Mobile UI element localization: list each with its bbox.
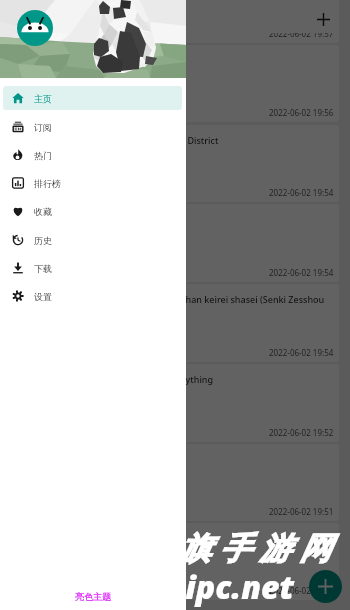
staticText: qipc.net [166, 565, 295, 609]
button[interactable]: 订阅 [3, 115, 182, 139]
staticText: 亮色主题 [75, 591, 111, 602]
staticText: 2022-06-02 19:50 [269, 585, 334, 596]
button[interactable]: 主页 [3, 86, 182, 110]
button[interactable]: Profile [17, 10, 53, 46]
staticText: Anything [174, 373, 214, 385]
button[interactable]: Gochuumon [11, 45, 339, 122]
button[interactable]: 收藏 [3, 199, 182, 223]
button[interactable]: Senki-chan keirei shasei (Senki Zesshou [11, 284, 339, 362]
staticText: 旗手游网 [175, 529, 335, 568]
staticText: Gochuumon [110, 54, 164, 66]
button[interactable]: 亮色主题 [71, 587, 115, 606]
staticText: 主页 [34, 93, 52, 104]
staticText: 热门 [34, 150, 52, 161]
staticText: 2022-06-02 19:54 [269, 267, 334, 278]
staticText: 2022-06-02 19:57 [269, 28, 334, 39]
button[interactable]: 历史 [3, 228, 182, 252]
button[interactable]: Add new [309, 570, 342, 603]
staticText: 收藏 [34, 206, 52, 217]
button[interactable]: 下载 [3, 256, 182, 280]
staticText: 2022-06-02 19:54 [269, 187, 334, 198]
button[interactable]: 热门 [3, 143, 182, 167]
staticText: 排行榜 [34, 178, 61, 189]
staticText: 2022-06-02 19:56 [269, 107, 334, 118]
button[interactable]: 设置 [3, 284, 182, 308]
button[interactable]: Kono Sekai [11, 204, 339, 282]
staticText: Shibuya District [151, 134, 219, 146]
button[interactable]: 2022-06-02 19:57 [11, 0, 339, 43]
staticText: 2022-06-02 19:52 [269, 427, 334, 438]
staticText: 下载 [34, 263, 52, 274]
button[interactable]: Add [312, 8, 334, 30]
staticText: 历史 [34, 235, 52, 246]
button[interactable]: Sword Art [11, 523, 339, 600]
button[interactable]: Yahari Ore [11, 444, 339, 521]
staticText: Senki-chan keirei shasei (Senki Zesshou [155, 293, 325, 305]
staticText: 设置 [34, 291, 52, 302]
button[interactable]: 排行榜 [3, 171, 182, 195]
staticText: 2022-06-02 19:54 [269, 347, 334, 358]
button[interactable]: Shibuya District [11, 125, 339, 202]
staticText: 订阅 [34, 122, 52, 133]
button[interactable]: Anything [11, 364, 339, 442]
staticText: 2022-06-02 19:51 [269, 506, 334, 517]
